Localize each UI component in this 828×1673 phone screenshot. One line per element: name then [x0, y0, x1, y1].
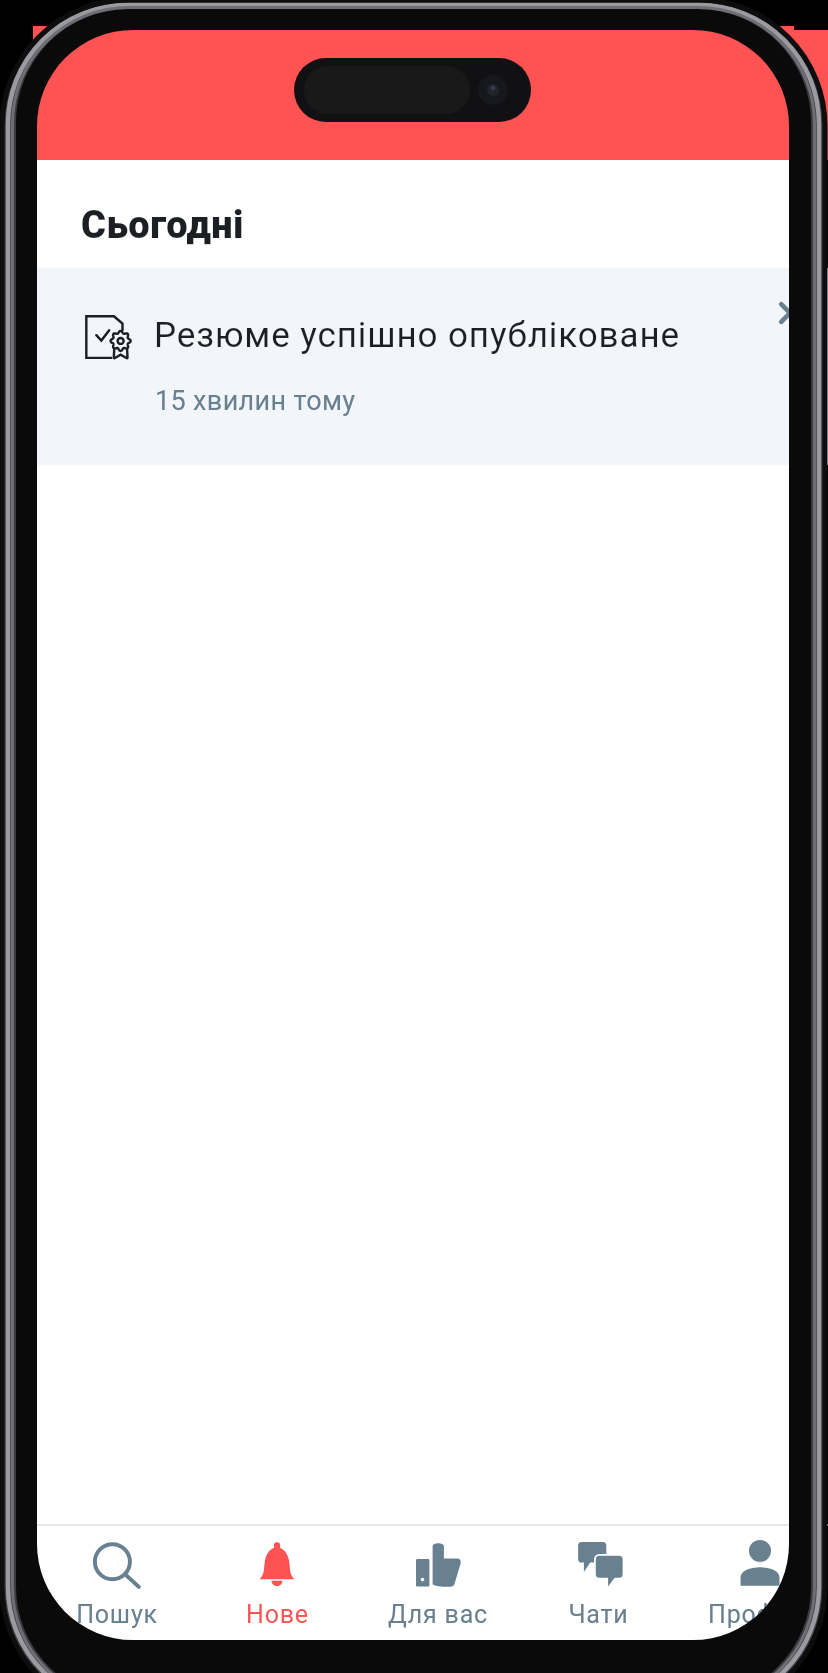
- button[interactable]: Пошук: [37, 1526, 197, 1640]
- button[interactable]: Чати: [518, 1526, 679, 1640]
- staticText: 15 хвилин тому: [155, 385, 356, 417]
- staticText: Профіль: [708, 1600, 812, 1629]
- staticText: Нове: [246, 1600, 309, 1629]
- staticText: Чати: [568, 1600, 629, 1629]
- button[interactable]: Закрити: [768, 291, 812, 335]
- staticText: Пошук: [76, 1600, 158, 1629]
- staticText: Сьогодні: [81, 203, 244, 248]
- button[interactable]: Резюме успішно опубліковане: [37, 268, 828, 465]
- button[interactable]: Для вас: [357, 1526, 518, 1640]
- staticText: Резюме успішно опубліковане: [154, 315, 680, 356]
- button[interactable]: Нове: [197, 1526, 357, 1640]
- button[interactable]: Профіль: [679, 1526, 828, 1640]
- staticText: Для вас: [388, 1600, 488, 1629]
